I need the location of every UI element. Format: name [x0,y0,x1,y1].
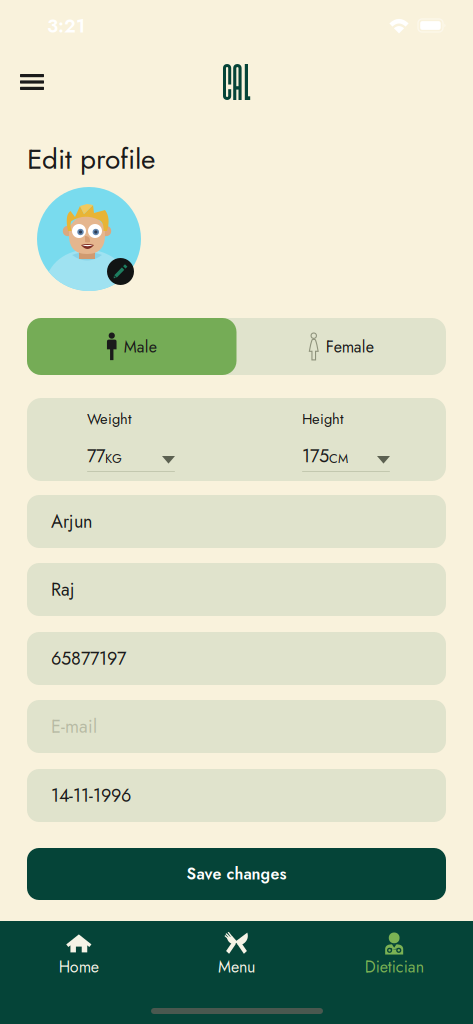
button[interactable]: 65877197 [27,632,446,685]
staticText: Save changes [186,862,286,885]
staticText: CM [329,449,348,468]
button[interactable]: Home [0,921,158,1024]
staticText: 14-11-1996 [51,782,131,808]
staticText: 3:21 [47,12,85,39]
staticText: Home [59,955,99,978]
button[interactable]: Male [27,318,236,375]
staticText: Male [124,335,157,358]
button[interactable]: Menu [8,60,56,104]
staticText: Arjun [51,508,92,534]
staticText: 65877197 [51,645,126,671]
staticText: 175 [302,443,329,469]
staticText: E-mail [51,713,97,739]
staticText: Weight [87,408,132,430]
button[interactable]: Weight [87,411,175,473]
staticText: Female [326,335,374,358]
button[interactable]: Arjun [27,495,446,548]
staticText: Dietician [365,955,424,978]
staticText: Height [302,408,344,430]
button[interactable]: E-mail [27,700,446,753]
staticText: 77 [87,443,105,469]
button[interactable]: Menu [158,921,315,1024]
button[interactable]: Female [236,318,446,375]
button[interactable]: 14-11-1996 [27,769,446,822]
staticText: Edit profile [27,139,155,179]
button[interactable]: Change profile photo [107,258,134,285]
button[interactable]: Save changes [27,848,446,900]
button[interactable]: Dietician [315,921,473,1024]
button[interactable]: Raj [27,563,446,616]
staticText: Raj [51,576,75,602]
staticText: KG [105,449,122,468]
button[interactable]: Height [302,411,390,473]
staticText: Menu [218,955,255,978]
